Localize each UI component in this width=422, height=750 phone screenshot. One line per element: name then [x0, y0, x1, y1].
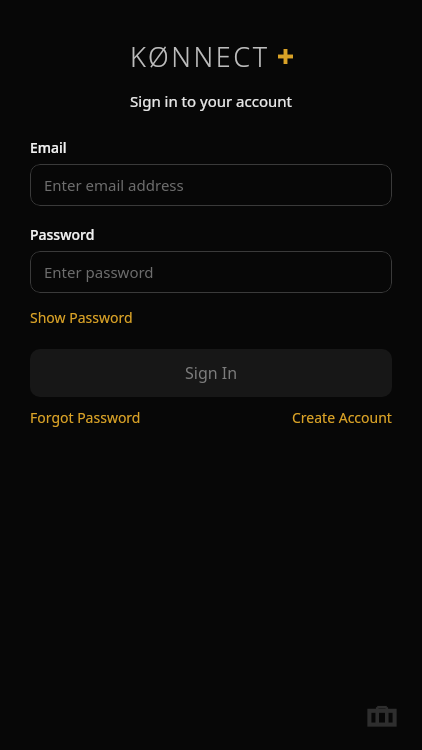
staticText: Show Password [30, 308, 133, 327]
button[interactable]: Support toolbox [364, 700, 400, 736]
staticText: Forgot Password [30, 408, 141, 427]
button[interactable]: Create Account [292, 408, 392, 427]
staticText: Create Account [292, 408, 392, 427]
button[interactable]: Forgot Password [30, 408, 141, 427]
staticText: Enter password [44, 262, 154, 282]
button[interactable]: Enter email address [30, 164, 392, 206]
staticText: Password [30, 225, 95, 244]
button[interactable]: Enter password [30, 251, 392, 293]
staticText: Sign in to your account [30, 91, 392, 111]
staticText: KØNNECT [130, 38, 270, 75]
button[interactable]: Show Password [30, 308, 133, 327]
staticText: Sign In [185, 362, 238, 384]
staticText: Email [30, 138, 67, 157]
staticText: Enter email address [44, 175, 184, 195]
button[interactable]: Sign In [30, 349, 392, 397]
